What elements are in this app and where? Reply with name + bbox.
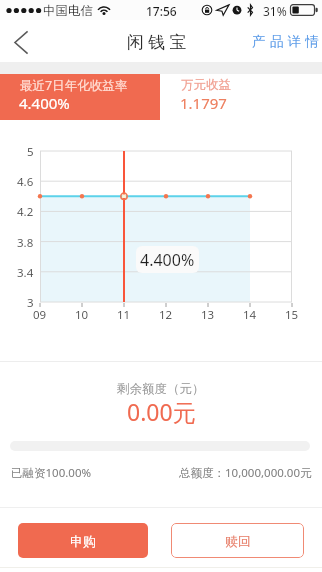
staticText: 4.400% (140, 249, 195, 271)
staticText: 12 (159, 307, 173, 323)
staticText: 最近7日年化收益率 (20, 77, 128, 94)
staticText: 5 (27, 144, 34, 160)
button[interactable]: 申购 (18, 523, 148, 558)
staticText: 已融资100.00% (11, 465, 92, 481)
staticText: 赎回 (225, 533, 251, 549)
staticText: 总额度：10,000,000.00元 (179, 465, 312, 481)
staticText: 3.8 (17, 235, 34, 251)
button[interactable]: 赎回 (171, 523, 304, 558)
staticText: 15 (285, 307, 299, 323)
staticText: 4.6 (17, 174, 34, 190)
staticText: 14 (243, 307, 257, 323)
staticText: 31% (263, 3, 287, 19)
button[interactable]: Back (2, 20, 42, 62)
staticText: 申购 (70, 533, 96, 549)
staticText: 万元收益 (181, 77, 231, 93)
staticText: 4.2 (17, 204, 34, 220)
staticText: 13 (201, 307, 215, 323)
staticText: 4.400% (19, 93, 70, 113)
staticText: 3.4 (17, 265, 34, 281)
staticText: 1.1797 (180, 93, 227, 113)
staticText: 10 (75, 307, 89, 323)
staticText: 中国电信 (43, 3, 93, 19)
staticText: 闲钱宝 (127, 32, 191, 53)
staticText: 3 (27, 295, 34, 311)
staticText: 17:56 (146, 3, 177, 19)
staticText: 11 (117, 307, 131, 323)
staticText: 剩余额度（元） (117, 381, 205, 397)
staticText: 0.00元 (127, 396, 196, 427)
button[interactable]: 产品详情 (245, 20, 322, 62)
staticText: 09 (33, 307, 47, 323)
staticText: 产品详情 (252, 33, 322, 50)
